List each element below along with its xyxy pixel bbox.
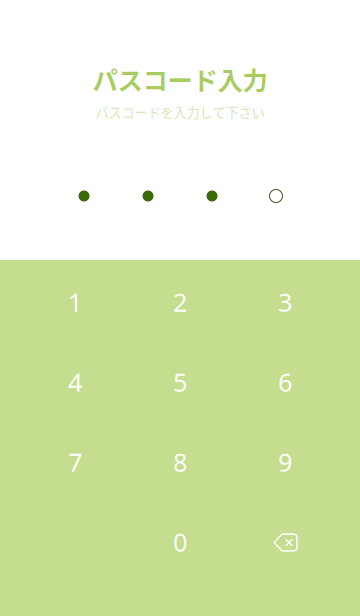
- staticText: 6: [278, 365, 292, 399]
- button[interactable]: 9: [232, 422, 337, 502]
- button[interactable]: 6: [232, 342, 337, 422]
- button[interactable]: 2: [127, 262, 232, 342]
- button[interactable]: 7: [22, 422, 127, 502]
- staticText: 7: [68, 445, 82, 479]
- button[interactable]: 4: [22, 342, 127, 422]
- button[interactable]: 0: [127, 502, 232, 582]
- button[interactable]: Delete: [232, 502, 337, 582]
- staticText: 3: [278, 285, 292, 319]
- staticText: パスコードを入力して下さい: [95, 102, 264, 122]
- staticText: 8: [173, 445, 187, 479]
- staticText: 9: [278, 445, 292, 479]
- staticText: 2: [173, 285, 187, 319]
- button[interactable]: 1: [22, 262, 127, 342]
- button[interactable]: 8: [127, 422, 232, 502]
- staticText: パスコード入力: [92, 61, 267, 97]
- staticText: 0: [173, 525, 187, 559]
- staticText: 4: [68, 365, 82, 399]
- staticText: 5: [173, 365, 187, 399]
- button[interactable]: 3: [232, 262, 337, 342]
- button[interactable]: 5: [127, 342, 232, 422]
- staticText: 1: [68, 285, 82, 319]
